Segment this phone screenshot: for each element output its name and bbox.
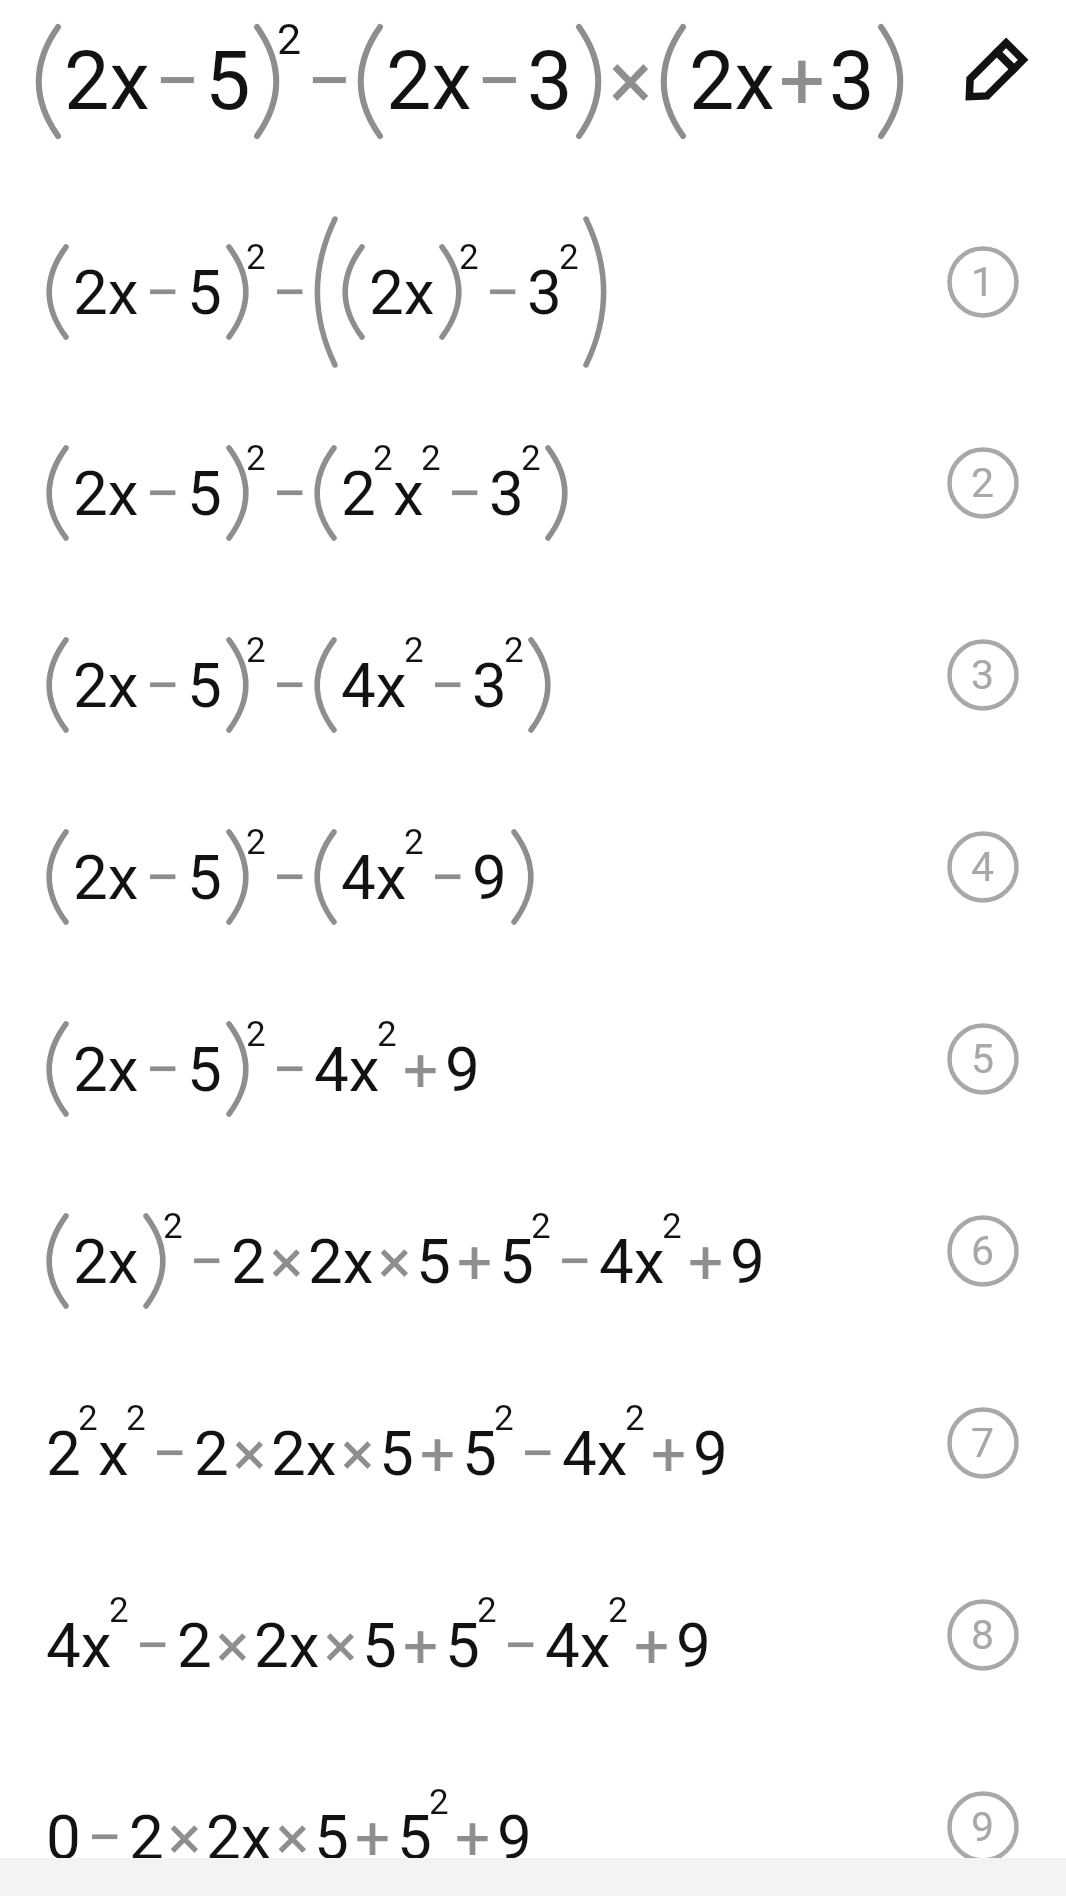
button[interactable]: 4 [947,831,1019,903]
staticText: × [216,1609,250,1682]
staticText: − [145,841,181,914]
staticText: 3 [489,457,524,530]
staticText: × [168,1801,202,1874]
button[interactable]: 2x [46,979,480,1159]
staticText: 5 [379,1417,414,1490]
staticText: 2 [608,1590,628,1631]
staticText: 4x [599,1225,665,1298]
staticText: 5 [187,256,222,329]
staticText: − [189,1225,225,1298]
staticText: − [87,1801,123,1874]
staticText: 2 [459,237,479,278]
staticText: 4x [341,649,407,722]
staticText: 2 [246,822,266,863]
staticText: 2 [404,822,424,863]
staticText: × [276,1801,310,1874]
staticText: 5 [187,841,222,914]
staticText: 5 [205,34,251,129]
button[interactable]: 2x [46,1171,765,1351]
staticText: 2 [109,1590,129,1631]
button[interactable]: 4x [46,1555,711,1735]
button[interactable]: 7 [947,1407,1019,1479]
button[interactable]: 9 [947,1791,1019,1863]
staticText: × [341,1417,375,1490]
staticText: 2 [246,1014,266,1055]
staticText: 3 [527,34,573,129]
button[interactable]: 1 [947,246,1019,318]
staticText: 2 [373,438,393,479]
staticText: + [634,1609,670,1682]
staticText: 2x [64,34,150,129]
staticText: 2 [504,630,524,671]
staticText: 2 [429,1782,449,1823]
staticText: − [152,1417,188,1490]
staticText: 2 [477,1590,497,1631]
button[interactable]: 2x [46,202,607,382]
staticText: − [145,1033,181,1106]
staticText: 2 [341,457,376,530]
staticText: − [145,457,181,530]
staticText: 2 [246,630,266,671]
staticText: + [420,1417,456,1490]
staticText: − [154,34,201,129]
staticText: − [272,841,308,914]
button[interactable]: 2 [947,447,1019,519]
staticText: 4x [545,1609,611,1682]
button[interactable]: 2 [46,1363,728,1543]
staticText: − [485,256,521,329]
staticText: − [503,1609,539,1682]
staticText: × [324,1609,358,1682]
staticText: x [393,457,424,530]
staticText: 2 [377,1014,397,1055]
staticText: − [272,1033,308,1106]
staticText: 5 [971,1035,995,1083]
button[interactable]: 0 [46,1747,532,1896]
staticText: 2 [246,237,266,278]
staticText: + [403,1609,439,1682]
staticText: 2x [308,1225,374,1298]
staticText: 2x [271,1417,337,1490]
staticText: + [779,34,825,129]
staticText: 5 [462,1417,497,1490]
staticText: − [272,457,308,530]
staticText: 5 [187,457,222,530]
staticText: 2 [277,14,302,64]
staticText: + [651,1417,687,1490]
button[interactable]: 2x [35,0,904,171]
staticText: 3 [472,649,507,722]
staticText: 5 [397,1801,432,1874]
staticText: 9 [445,1033,480,1106]
staticText: 9 [676,1609,711,1682]
staticText: 2 [129,1801,164,1874]
button[interactable]: 8 [947,1599,1019,1671]
staticText: × [609,34,653,129]
button[interactable] [949,31,1035,117]
staticText: 3 [971,651,995,699]
staticText: 2x [386,34,472,129]
staticText: 2x [689,34,775,129]
staticText: 9 [693,1417,728,1490]
staticText: 2 [971,459,995,507]
staticText: 2x [369,256,435,329]
staticText: 4x [314,1033,380,1106]
button[interactable]: 3 [947,639,1019,711]
staticText: − [520,1417,556,1490]
staticText: 2 [46,1417,81,1490]
button[interactable]: 2x [46,403,568,583]
button[interactable]: 6 [947,1215,1019,1287]
staticText: 2 [521,438,541,479]
staticText: x [98,1417,129,1490]
staticText: 8 [971,1611,995,1659]
staticText: 2x [73,457,139,530]
staticText: − [145,256,181,329]
staticText: 4 [971,843,995,891]
staticText: 2 [559,237,579,278]
staticText: 3 [527,256,562,329]
staticText: − [447,457,483,530]
button[interactable]: 2x [46,787,534,967]
button[interactable]: 5 [947,1023,1019,1095]
staticText: 5 [499,1225,534,1298]
button[interactable]: 2x [46,595,551,775]
staticText: 2x [73,649,139,722]
staticText: 9 [497,1801,532,1874]
